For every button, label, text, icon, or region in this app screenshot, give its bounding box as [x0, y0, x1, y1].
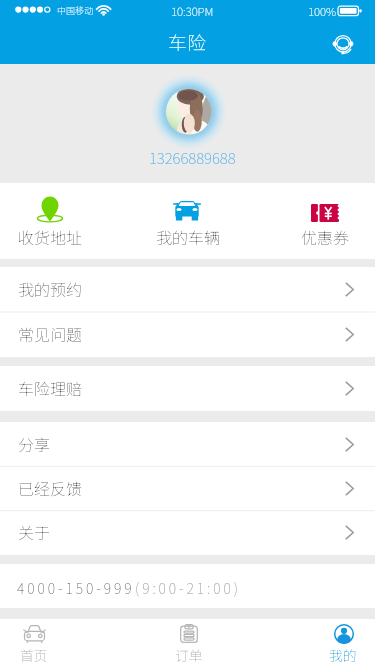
button[interactable]: 4000-150-999: [0, 564, 375, 608]
button[interactable]: 关于: [0, 510, 375, 554]
staticText: 订单: [175, 645, 203, 665]
button[interactable]: 收货地址: [10, 183, 90, 259]
staticText: 车险理赔: [18, 376, 83, 399]
button[interactable]: 我的: [329, 619, 357, 667]
staticText: 优惠券: [301, 225, 350, 248]
button[interactable]: 优惠券: [285, 183, 365, 259]
staticText: 关于: [18, 520, 51, 543]
staticText: 已经反馈: [18, 476, 83, 499]
staticText: 常见问题: [18, 322, 83, 345]
button[interactable]: 常见问题: [0, 312, 375, 357]
button[interactable]: 订单: [175, 619, 203, 667]
button[interactable]: 我的车辆: [148, 183, 228, 259]
button[interactable]: 已经反馈: [0, 466, 375, 510]
staticText: 首页: [20, 645, 48, 665]
button[interactable]: 在线客服: [324, 25, 362, 63]
staticText: 收货地址: [18, 225, 83, 248]
staticText: 我的: [329, 645, 357, 665]
staticText: 我的车辆: [156, 225, 221, 248]
staticText: 车险: [168, 28, 207, 56]
button[interactable]: 车险理赔: [0, 366, 375, 411]
button[interactable]: 首页: [20, 619, 48, 667]
staticText: 我的预约: [18, 277, 83, 300]
button[interactable]: 分享: [0, 422, 375, 466]
staticText: 100%: [308, 3, 337, 20]
button[interactable]: 我的预约: [0, 267, 375, 312]
staticText: (9:00-21:00): [135, 578, 241, 598]
staticText: 13266889688: [149, 146, 236, 168]
staticText: 中国移动: [57, 4, 94, 17]
staticText: 10:30PM: [171, 3, 214, 20]
staticText: 分享: [18, 432, 51, 455]
staticText: 4000-150-999: [17, 578, 135, 598]
